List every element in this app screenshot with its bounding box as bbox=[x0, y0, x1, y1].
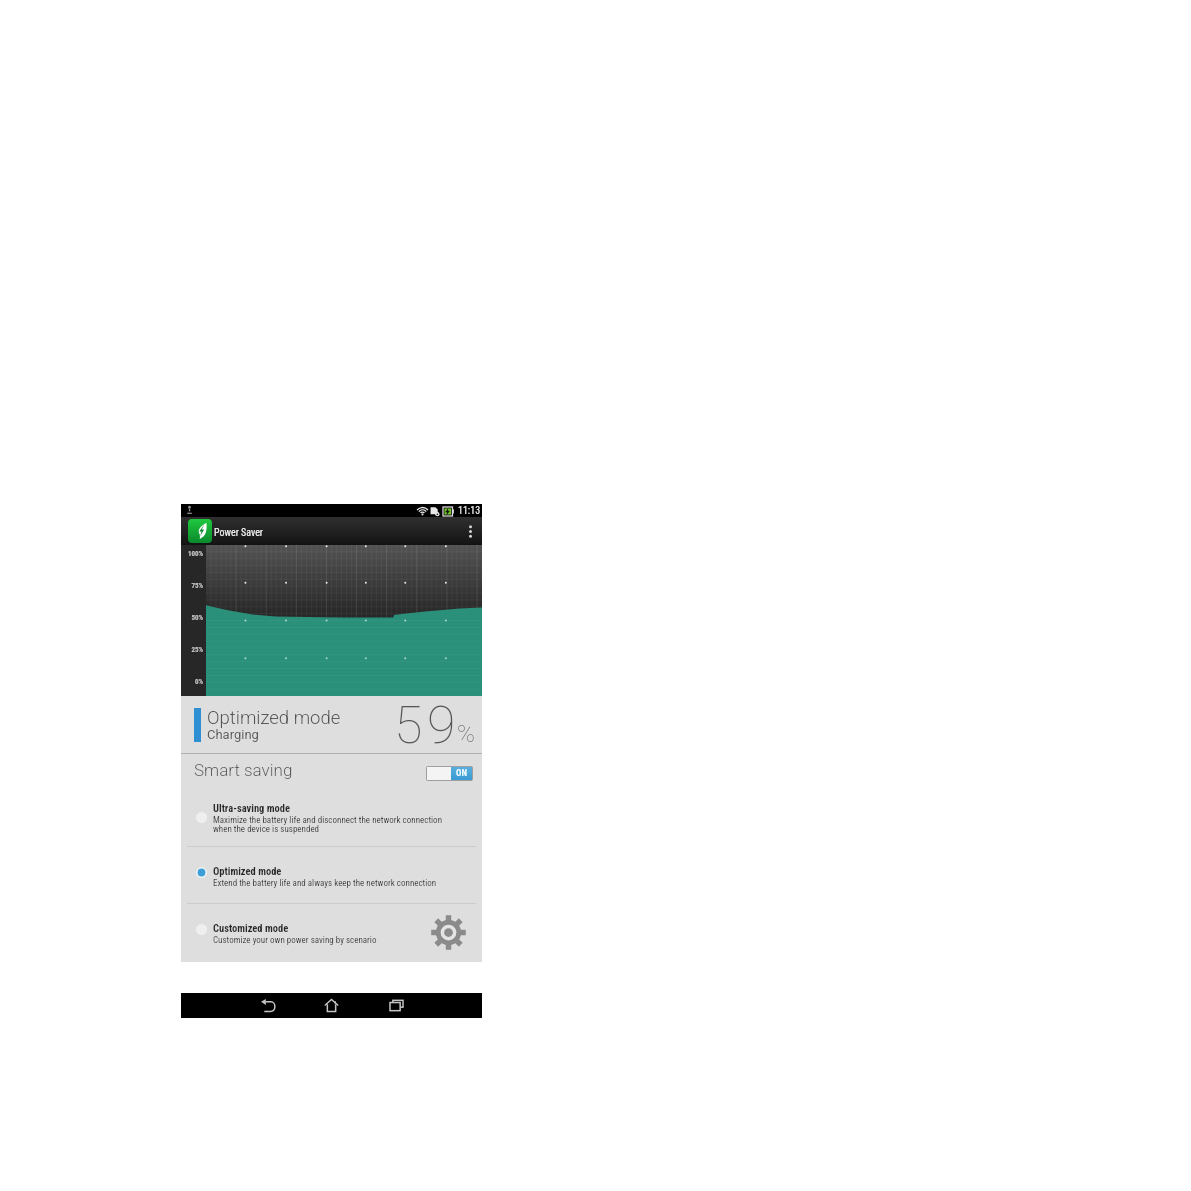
staticText: Optimized mode bbox=[213, 865, 282, 877]
staticText: Power Saver bbox=[214, 527, 263, 539]
staticText: Ultra-saving mode bbox=[213, 802, 291, 814]
staticText: Optimized mode bbox=[207, 707, 341, 729]
button[interactable]: Ultra-saving mode bbox=[181, 789, 482, 846]
button[interactable]: Recents bbox=[383, 993, 409, 1018]
button[interactable] bbox=[188, 519, 212, 543]
staticText: Charging bbox=[207, 727, 259, 742]
button[interactable]: Back bbox=[255, 993, 281, 1018]
button[interactable]: Home bbox=[318, 993, 344, 1018]
button[interactable]: Optimized mode bbox=[181, 847, 482, 903]
button[interactable]: ON bbox=[427, 767, 472, 780]
staticText: 59 bbox=[394, 695, 460, 752]
staticText: Extend the battery life and always keep … bbox=[213, 878, 437, 889]
staticText: Customized mode bbox=[213, 922, 289, 934]
button[interactable]: More options bbox=[458, 517, 482, 545]
staticText: 100% bbox=[181, 550, 203, 558]
staticText: Smart saving bbox=[194, 760, 293, 780]
staticText: 50% bbox=[181, 614, 203, 622]
staticText: 11:13 bbox=[458, 505, 481, 517]
staticText: Customize your own power saving by scena… bbox=[213, 935, 377, 946]
button[interactable]: Customized mode bbox=[181, 904, 482, 962]
staticText: % bbox=[457, 720, 475, 748]
staticText: 75% bbox=[181, 582, 203, 590]
staticText: 0% bbox=[181, 678, 203, 686]
staticText: when the device is suspended bbox=[213, 824, 320, 835]
staticText: ON bbox=[456, 768, 467, 779]
staticText: 25% bbox=[181, 646, 203, 654]
staticText: Maximize the battery life and disconnect… bbox=[213, 815, 442, 826]
